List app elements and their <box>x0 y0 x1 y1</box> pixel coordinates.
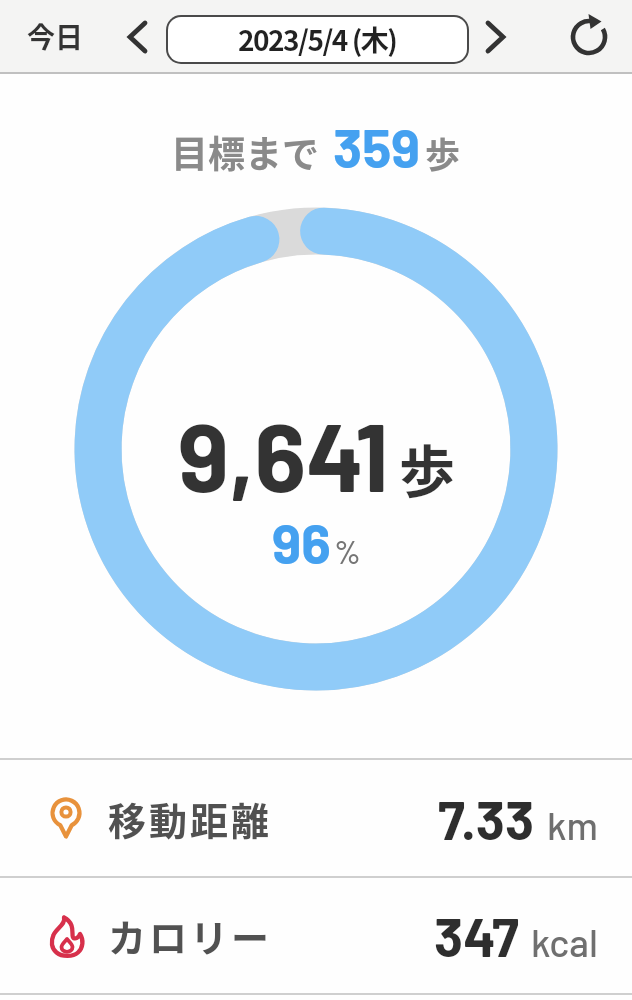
button[interactable]: 移動距離 <box>0 760 632 876</box>
staticText: 歩 <box>399 427 455 508</box>
staticText: 2023/5/4 (木) <box>238 19 397 60</box>
staticText: % <box>334 532 361 570</box>
button[interactable]: 2023/5/4 (木) <box>168 17 467 62</box>
staticText: 96 <box>272 509 331 575</box>
staticText: km <box>547 802 598 848</box>
staticText: 347 <box>434 903 519 968</box>
button[interactable]: 今日 <box>27 16 84 57</box>
staticText: kcal <box>531 919 598 965</box>
staticText: 9,641 <box>178 396 389 511</box>
staticText: 歩 <box>425 127 461 178</box>
button[interactable] <box>125 21 149 53</box>
staticText: 目標まで <box>171 125 319 179</box>
button[interactable] <box>484 21 508 53</box>
button[interactable] <box>571 18 607 54</box>
staticText: 359 <box>333 114 420 179</box>
staticText: 7.33 <box>438 786 535 851</box>
staticText: カロリー <box>108 908 273 963</box>
staticText: 今日 <box>27 16 84 57</box>
staticText: 移動距離 <box>108 791 273 846</box>
button[interactable]: カロリー <box>0 878 632 993</box>
